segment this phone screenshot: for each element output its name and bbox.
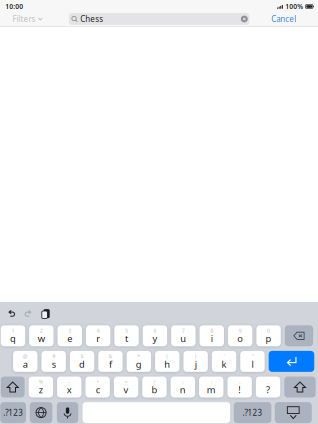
- staticText: o: [237, 332, 243, 345]
- button[interactable]: ;: [171, 376, 195, 397]
- button[interactable]: 8: [200, 325, 224, 346]
- button[interactable]: 2: [29, 325, 53, 346]
- staticText: ?: [266, 383, 270, 396]
- staticText: .?123: [243, 407, 263, 418]
- staticText: Filters: [12, 14, 35, 24]
- staticText: (: [166, 353, 168, 360]
- staticText: j: [195, 358, 197, 370]
- staticText: Chess: [80, 14, 103, 24]
- staticText: 8: [210, 327, 213, 334]
- button[interactable]: Paste: [36, 306, 53, 322]
- button[interactable]: ': [212, 351, 236, 372]
- button[interactable]: 9: [228, 325, 252, 346]
- staticText: !: [238, 383, 241, 396]
- button[interactable]: &: [98, 351, 123, 372]
- button[interactable]: Delete: [285, 325, 313, 346]
- staticText: x: [67, 383, 72, 396]
- staticText: 3: [68, 327, 71, 334]
- staticText: z: [39, 383, 43, 396]
- staticText: u: [180, 332, 186, 345]
- staticText: w: [38, 332, 45, 345]
- staticText: #: [52, 353, 55, 360]
- button[interactable]: #: [41, 351, 66, 372]
- staticText: d: [79, 358, 85, 370]
- button[interactable]: Undo: [3, 306, 20, 322]
- staticText: ): [195, 353, 197, 360]
- staticText: k: [221, 358, 226, 370]
- staticText: 9: [239, 327, 242, 334]
- staticText: m: [207, 383, 216, 396]
- staticText: h: [164, 358, 170, 370]
- staticText: Cancel: [271, 14, 296, 24]
- staticText: *: [137, 353, 140, 360]
- button[interactable]: Filters: [0, 12, 69, 26]
- staticText: %: [39, 378, 43, 385]
- staticText: n: [180, 383, 186, 396]
- staticText: r: [96, 332, 100, 345]
- button[interactable]: Emoji: [30, 402, 52, 423]
- button[interactable]: =: [114, 376, 138, 397]
- staticText: 4: [97, 327, 100, 334]
- button[interactable]: ": [240, 351, 265, 372]
- staticText: c: [96, 383, 100, 396]
- button[interactable]: /: [142, 376, 167, 397]
- button[interactable]: 3: [57, 325, 82, 346]
- staticText: f: [109, 358, 112, 370]
- staticText: t: [125, 332, 128, 345]
- button[interactable]: Shift: [284, 376, 316, 397]
- staticText: 7: [182, 327, 185, 334]
- staticText: -: [68, 378, 70, 385]
- button[interactable]: ,: [227, 376, 252, 397]
- staticText: .?123: [3, 407, 23, 418]
- staticText: p: [266, 332, 272, 345]
- staticText: 0: [267, 327, 270, 334]
- button[interactable]: Cancel: [249, 12, 318, 26]
- staticText: $: [80, 353, 83, 360]
- button[interactable]: Hide keyboard: [275, 402, 312, 423]
- staticText: @: [23, 353, 28, 360]
- button[interactable]: ): [183, 351, 208, 372]
- button[interactable]: 6: [143, 325, 167, 346]
- staticText: 6: [153, 327, 156, 334]
- staticText: :: [211, 378, 212, 385]
- button[interactable]: .?123: [234, 402, 271, 423]
- button[interactable]: .?123: [0, 402, 26, 423]
- staticText: /: [153, 378, 155, 385]
- button[interactable]: *: [127, 351, 151, 372]
- button[interactable]: Shift: [1, 376, 25, 397]
- button[interactable]: Redo: [20, 306, 36, 322]
- staticText: 1: [11, 327, 14, 334]
- staticText: ;: [182, 378, 183, 385]
- button[interactable]: 7: [171, 325, 196, 346]
- staticText: +: [96, 378, 99, 385]
- staticText: b: [151, 383, 157, 396]
- button[interactable]: :: [199, 376, 223, 397]
- staticText: =: [124, 378, 127, 385]
- button[interactable]: Search: [269, 351, 314, 372]
- staticText: .: [268, 378, 269, 385]
- staticText: g: [136, 358, 142, 370]
- button[interactable]: 5: [114, 325, 139, 346]
- button[interactable]: 0: [256, 325, 281, 346]
- staticText: ,: [239, 378, 240, 385]
- staticText: q: [10, 332, 16, 345]
- button[interactable]: @: [13, 351, 37, 372]
- button[interactable]: +: [85, 376, 110, 397]
- button[interactable]: -: [57, 376, 81, 397]
- button[interactable]: Chess: [69, 13, 249, 25]
- staticText: v: [123, 383, 128, 396]
- button[interactable]: Dictation: [57, 402, 78, 423]
- staticText: &: [108, 353, 112, 360]
- staticText: 100%: [285, 2, 303, 11]
- button[interactable]: 4: [86, 325, 110, 346]
- staticText: y: [152, 332, 157, 345]
- staticText: e: [67, 332, 72, 345]
- button[interactable]: 1: [1, 325, 25, 346]
- staticText: 10:00: [5, 2, 23, 11]
- button[interactable]: %: [29, 376, 53, 397]
- button[interactable]: .: [256, 376, 280, 397]
- button[interactable]: (: [155, 351, 179, 372]
- button[interactable]: $: [70, 351, 94, 372]
- staticText: a: [23, 358, 28, 370]
